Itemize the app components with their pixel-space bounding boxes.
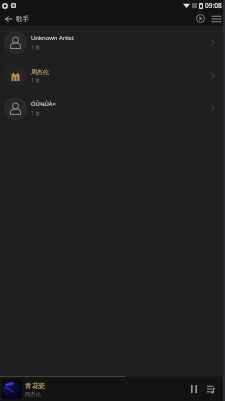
staticText: Unknown Artist [31,34,74,42]
button[interactable]: Unknown Artist [0,26,225,59]
staticText: 周杰伦 [31,68,49,75]
button[interactable]: 周杰伦 [0,59,225,92]
staticText: 1 首 [31,110,40,117]
button[interactable]: ÓÙ¾ÙÀ× [0,92,225,125]
button[interactable]: Back [0,11,16,26]
staticText: 周杰伦 [25,391,41,398]
staticText: 09:08 [205,1,222,10]
staticText: 1 首 [31,77,40,84]
button[interactable]: Pause [187,382,201,396]
button[interactable]: Menu [208,11,224,26]
button[interactable]: Playlist [204,382,218,396]
staticText: 1 首 [31,44,40,51]
button[interactable]: Play all [192,11,208,26]
staticText: 青花瓷 [25,381,46,390]
staticText: ÓÙ¾ÙÀ× [31,100,56,108]
staticText: 歌手 [16,15,30,23]
